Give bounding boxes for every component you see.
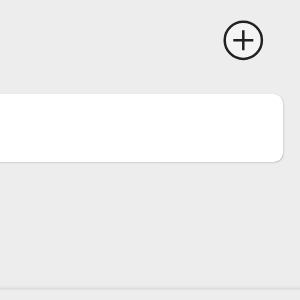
button[interactable]: Add (220, 17, 266, 63)
